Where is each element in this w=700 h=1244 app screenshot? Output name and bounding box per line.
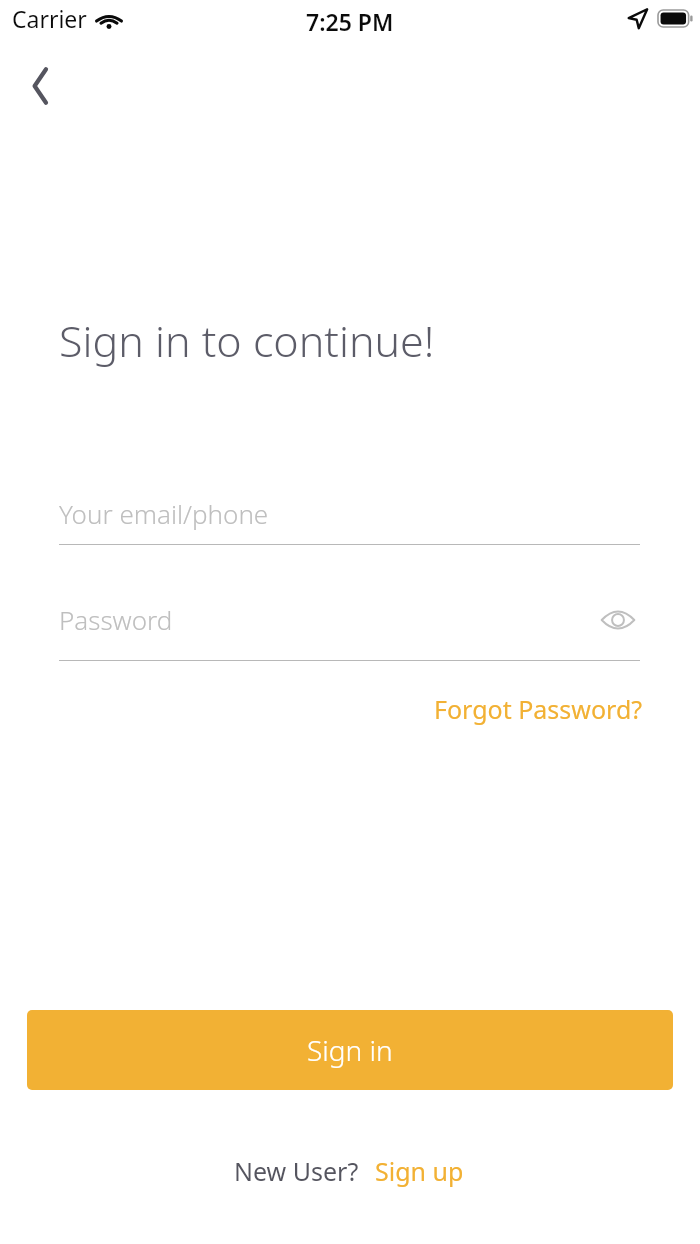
- button[interactable]: Back: [16, 56, 76, 116]
- button[interactable]: Sign up: [373, 1150, 466, 1192]
- button[interactable]: Password: [59, 602, 640, 637]
- button[interactable]: Sign in: [27, 1010, 673, 1090]
- staticText: Password: [59, 602, 596, 637]
- staticText: Sign in: [307, 1031, 393, 1069]
- staticText: Forgot Password?: [434, 692, 643, 726]
- button[interactable]: Forgot Password?: [428, 688, 649, 730]
- staticText: 7:25 PM: [306, 6, 394, 37]
- other: Location: [627, 8, 648, 29]
- staticText: Carrier: [12, 3, 87, 34]
- staticText: Sign up: [375, 1154, 464, 1188]
- staticText: New User?: [234, 1154, 359, 1188]
- staticText: Your email/phone: [59, 496, 269, 531]
- button[interactable]: Your email/phone: [59, 496, 640, 545]
- button[interactable]: Show password: [596, 604, 640, 636]
- staticText: Sign in to continue!: [59, 311, 435, 370]
